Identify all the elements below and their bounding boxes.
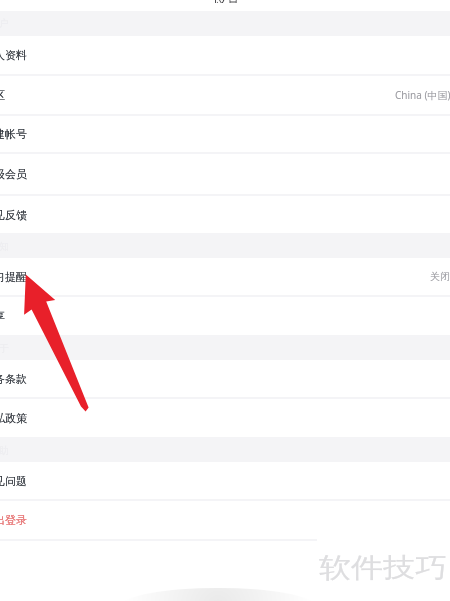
staticText: 设置 [213,0,240,3]
staticText: 软件技巧 [319,551,447,585]
staticText: 学习提醒 [0,270,27,284]
staticText: 分享 [0,309,5,323]
staticText: 创建帐号 [0,127,27,141]
button[interactable]: 升级会员 [0,154,450,196]
button[interactable]: 常见问题 [0,462,450,501]
staticText: 隐私政策 [0,411,27,425]
staticText: China (中国) [395,88,450,102]
staticText: 退出登录 [0,513,27,527]
button[interactable]: 退出登录 [0,501,450,541]
button[interactable]: 意见反馈 [0,196,450,235]
staticText: 服务条款 [0,372,27,386]
staticText: 个人资料 [0,48,27,62]
button[interactable]: 隐私政策 [0,399,450,439]
button[interactable]: 地区 [0,76,450,116]
staticText: 学习提醒 [0,270,27,284]
staticText: 创建帐号 [0,127,27,141]
button[interactable]: 分享 [0,297,450,337]
staticText: 意见反馈 [0,208,27,222]
staticText: 升级会员 [0,167,27,181]
button[interactable]: 设置 [0,0,450,11]
staticText: 分享 [0,309,5,323]
button[interactable]: 个人资料 [0,36,450,76]
staticText: 意见反馈 [0,208,27,222]
staticText: 退出登录 [0,513,27,527]
staticText: 地区 [0,88,5,102]
button[interactable]: 服务条款 [0,360,450,399]
staticText: 常见问题 [0,474,27,488]
button[interactable]: 创建帐号 [0,116,450,154]
staticText: 隐私政策 [0,411,27,425]
staticText: 地区 [0,88,5,102]
staticText: 服务条款 [0,372,27,386]
staticText: 常见问题 [0,474,27,488]
staticText: 个人资料 [0,48,27,62]
staticText: 关闭 [430,270,450,283]
button[interactable]: 学习提醒 [0,258,450,297]
staticText: 升级会员 [0,167,27,181]
